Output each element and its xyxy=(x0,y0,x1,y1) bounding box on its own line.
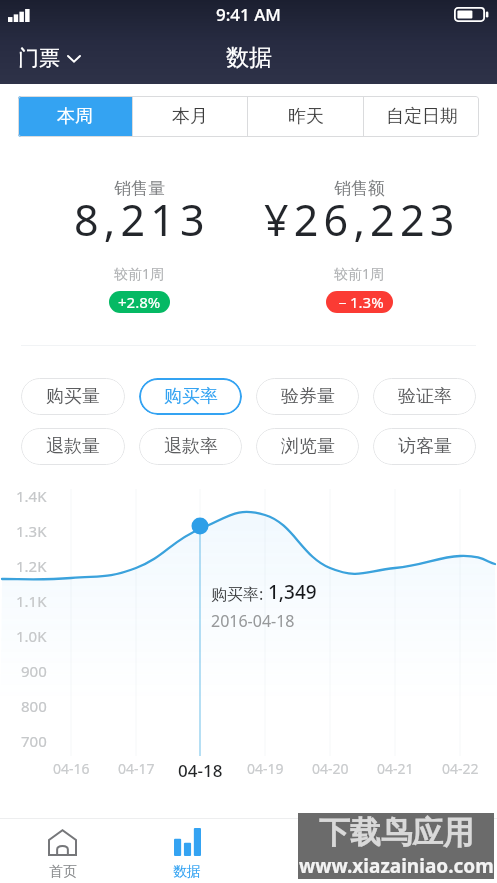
staticText: www.xiazainiao.com xyxy=(299,853,494,879)
staticText: 04-21 xyxy=(377,759,414,778)
staticText: 2016-04-18 xyxy=(211,610,295,632)
staticText: 1.4K xyxy=(16,486,47,506)
staticText: 1.0K xyxy=(16,626,47,646)
staticText: 1,349 xyxy=(268,579,317,605)
button[interactable]: 购买量 xyxy=(21,378,125,415)
button[interactable]: 本月 xyxy=(133,96,247,137)
staticText: 数据 xyxy=(173,863,201,881)
button[interactable]: 本周 xyxy=(18,96,132,137)
staticText: 800 xyxy=(21,696,47,716)
staticText: 退款量 xyxy=(46,435,100,458)
staticText: 访客量 xyxy=(398,435,452,458)
staticText: 购买率 xyxy=(164,385,218,408)
staticText: 本周 xyxy=(57,105,93,128)
staticText: 700 xyxy=(21,731,47,751)
staticText: 购买率: xyxy=(211,583,264,605)
button[interactable]: 退款率 xyxy=(139,428,242,465)
staticText: 门票 xyxy=(18,45,60,71)
staticText: －1.3% xyxy=(335,292,384,312)
staticText: 04-16 xyxy=(53,759,90,778)
button[interactable]: 自定日期 xyxy=(364,96,479,137)
staticText: 销售量 xyxy=(114,178,165,199)
staticText: ¥26,223 xyxy=(264,190,460,249)
staticText: 04-19 xyxy=(247,759,284,778)
staticText: 浏览量 xyxy=(281,435,335,458)
staticText: 04-18 xyxy=(178,759,223,782)
staticText: 销售额 xyxy=(334,178,385,199)
staticText: 验证率 xyxy=(398,385,452,408)
staticText: 9:41 AM xyxy=(216,3,281,26)
staticText: 退款率 xyxy=(164,435,218,458)
staticText: 下载鸟应用 xyxy=(319,813,474,852)
staticText: 04-20 xyxy=(312,759,349,778)
button[interactable]: 首页 xyxy=(0,826,125,883)
button[interactable]: 浏览量 xyxy=(256,428,359,465)
staticText: 购买量 xyxy=(46,385,100,408)
staticText: 1.2K xyxy=(16,556,47,576)
button[interactable]: 验券量 xyxy=(256,378,359,415)
button[interactable]: 昨天 xyxy=(248,96,363,137)
staticText: 900 xyxy=(21,661,47,681)
staticText: 自定日期 xyxy=(386,105,458,128)
staticText: +2.8% xyxy=(118,292,161,312)
staticText: 昨天 xyxy=(288,105,324,128)
button[interactable]: 数据 xyxy=(125,826,249,883)
staticText: 较前1周 xyxy=(334,264,385,283)
staticText: 本月 xyxy=(172,105,208,128)
button[interactable]: 退款量 xyxy=(21,428,125,465)
button[interactable]: 访客量 xyxy=(373,428,476,465)
staticText: 较前1周 xyxy=(114,264,165,283)
staticText: 04-22 xyxy=(442,759,479,778)
staticText: 8,213 xyxy=(74,190,210,249)
button[interactable]: 验证率 xyxy=(373,378,476,415)
staticText: 1.3K xyxy=(16,521,47,541)
staticText: 首页 xyxy=(49,863,77,881)
staticText: 验券量 xyxy=(281,385,335,408)
button[interactable]: 门票 xyxy=(14,39,85,77)
staticText: 04-17 xyxy=(118,759,155,778)
staticText: 数据 xyxy=(226,43,272,72)
button[interactable]: 购买率 xyxy=(139,378,242,415)
staticText: 1.1K xyxy=(16,591,47,611)
